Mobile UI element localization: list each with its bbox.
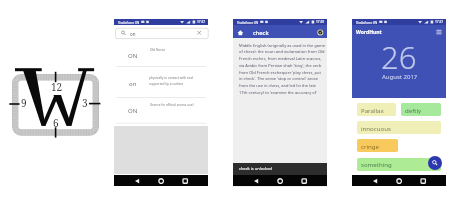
staticText: Vodafone IN [118,20,140,25]
staticText: 3 [82,96,88,110]
staticText: Parallax [361,106,384,114]
button[interactable] [357,158,441,171]
button[interactable] [357,121,441,134]
staticText: cringe [361,142,379,150]
staticText: 17th century) to 'examine the accuracy o… [239,90,318,95]
staticText: on [129,80,137,88]
staticText: on [130,31,136,37]
staticText: Greece (in official access use) [150,103,194,107]
staticText: deftly [405,106,422,114]
staticText: French eschec, from medieval Latin scacc… [239,56,322,61]
staticText: in check'. The sense 'stop or control' a… [239,76,318,81]
staticText: physically in contact with and [149,76,193,80]
button[interactable]: Unlocked [315,26,325,36]
staticText: 12 [51,80,63,94]
button[interactable] [401,103,441,116]
staticText: 9 [21,96,27,110]
staticText: 26 [381,36,417,78]
button[interactable]: Home [236,26,246,36]
staticText: 17:37 [435,20,444,24]
staticText: via Arabic from Persian shah 'king'; the… [239,63,322,68]
staticText: check is unlocked [239,166,272,171]
button[interactable]: Search [428,156,442,170]
staticText: 17:37 [197,20,206,24]
staticText: ON [128,52,138,60]
button[interactable] [357,103,396,116]
staticText: Vodafone IN [237,20,259,25]
staticText: 6 [53,116,59,130]
staticText: August 2017 [382,73,418,81]
button[interactable] [357,139,398,152]
staticText: Vodafone IN [356,20,378,25]
staticText: check [253,29,269,37]
staticText: Old Norse [150,48,166,52]
staticText: from the use in chess, and led (in the l… [239,83,317,88]
button[interactable]: Search field [116,28,209,38]
staticText: innocuous [361,124,391,132]
staticText: Middle English (originally as used in th… [239,43,326,48]
staticText: ON [128,107,138,115]
button[interactable]: Sort [434,27,444,36]
staticText: supported by a surface [149,82,184,86]
staticText: of chess): the noun and exclamation from… [239,49,325,54]
staticText: 17:39 [316,20,325,24]
staticText: WordHunt [356,29,382,36]
staticText: from Old French eschequier 'play chess, … [239,70,321,75]
staticText: something [361,160,392,168]
